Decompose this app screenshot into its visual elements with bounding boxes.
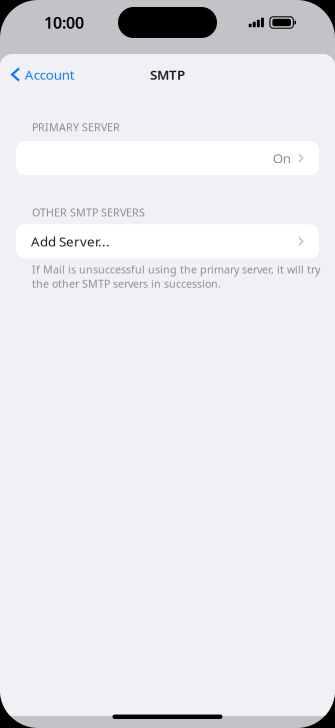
button[interactable]: On bbox=[16, 141, 319, 175]
staticText: On bbox=[273, 149, 291, 167]
button[interactable]: Account bbox=[0, 57, 85, 92]
staticText: Add Server... bbox=[31, 232, 110, 250]
staticText: PRIMARY SERVER bbox=[32, 120, 120, 134]
staticText: SMTP bbox=[150, 66, 185, 83]
staticText: If Mail is unsuccessful using the primar… bbox=[32, 262, 320, 291]
button[interactable]: Add Server... bbox=[16, 224, 319, 258]
staticText: 10:00 bbox=[44, 12, 84, 33]
staticText: Account bbox=[25, 66, 75, 83]
staticText: OTHER SMTP SERVERS bbox=[32, 205, 145, 219]
